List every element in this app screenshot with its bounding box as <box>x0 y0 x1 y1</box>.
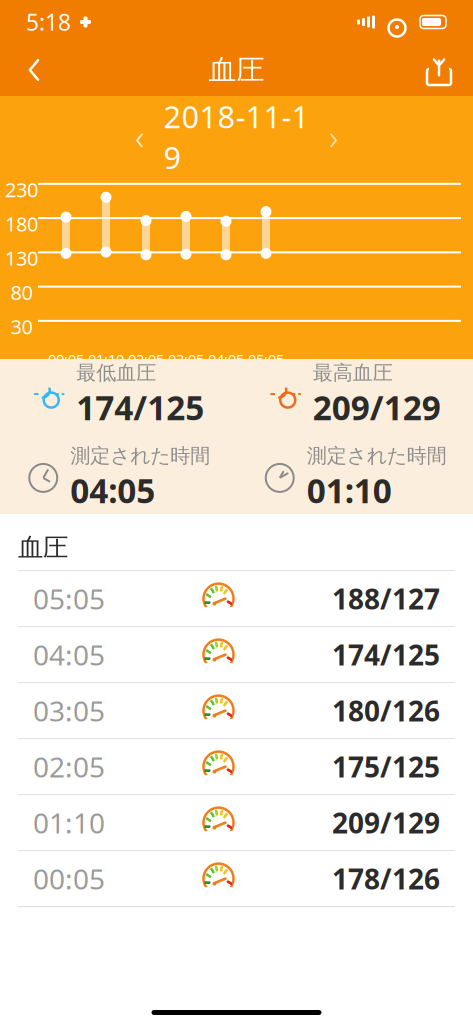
staticText: 03:05 <box>33 692 105 729</box>
staticText: 03:05 <box>168 350 204 369</box>
button[interactable]: 00:05 <box>0 851 473 907</box>
staticText: 230 <box>5 176 38 203</box>
staticText: 30 <box>10 313 32 340</box>
staticText: 血圧 <box>18 532 68 563</box>
staticText: 188/127 <box>332 580 440 617</box>
staticText: 測定された時間 <box>70 443 210 468</box>
staticText: 130 <box>5 245 38 271</box>
staticText: 05:05 <box>33 580 105 617</box>
button[interactable]: 05:05 <box>0 571 473 627</box>
staticText: 180/126 <box>332 692 440 729</box>
staticText: 01:10 <box>88 350 124 369</box>
staticText: 最低血圧 <box>76 361 156 385</box>
staticText: 最高血圧 <box>313 361 393 385</box>
button[interactable]: 03:05 <box>0 683 473 739</box>
staticText: 01:10 <box>33 804 105 841</box>
staticText: 血圧 <box>208 53 264 87</box>
staticText: › <box>329 114 338 160</box>
staticText: 178/126 <box>332 860 440 897</box>
staticText: 00:05 <box>48 350 84 369</box>
button[interactable]: Share <box>417 48 461 92</box>
staticText: 02:05 <box>33 748 105 785</box>
staticText: 04:05 <box>70 468 155 512</box>
staticText: 80 <box>10 279 32 306</box>
staticText: 174/125 <box>76 385 204 429</box>
staticText: 04:05 <box>208 350 244 369</box>
button[interactable]: Next day <box>311 117 355 157</box>
button[interactable]: Previous day <box>117 117 161 157</box>
staticText: 測定された時間 <box>307 443 447 468</box>
staticText: 209/129 <box>313 385 441 429</box>
staticText: 05:05 <box>248 350 284 369</box>
staticText: 01:10 <box>307 468 392 512</box>
staticText: ‹ <box>135 114 144 160</box>
button[interactable]: 02:05 <box>0 739 473 795</box>
staticText: 2018-11-19 <box>163 96 309 177</box>
staticText: 00:05 <box>33 860 105 897</box>
staticText: 04:05 <box>33 636 105 673</box>
staticText: 174/125 <box>332 636 440 673</box>
staticText: 180 <box>5 210 38 237</box>
staticText: 209/129 <box>332 804 440 841</box>
button[interactable]: 01:10 <box>0 795 473 851</box>
button[interactable]: Back <box>12 48 56 92</box>
staticText: 02:05 <box>128 350 164 369</box>
button[interactable]: 04:05 <box>0 627 473 683</box>
staticText: 175/125 <box>332 748 440 785</box>
staticText: 5:18 <box>26 7 71 37</box>
